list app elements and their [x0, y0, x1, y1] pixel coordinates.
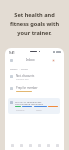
staticText: Inbox: [26, 58, 35, 62]
button[interactable]: Tab 3: [26, 141, 34, 149]
button[interactable]: Tab 5: [44, 141, 52, 149]
button[interactable]: Set 24/10 calendar get the following rem…: [8, 98, 60, 114]
staticText: meeting: [16, 109, 25, 112]
staticText: Set health and fitness goals with your t…: [0, 11, 69, 36]
staticText: Prep for member: [16, 86, 38, 90]
button[interactable]: Not. discounts: [10, 74, 60, 82]
button[interactable]: Prep for member: [10, 86, 60, 94]
button[interactable]: Tab 2: [17, 141, 25, 149]
button[interactable]: Tab 6: [53, 141, 61, 149]
staticText: subtitle line: [16, 78, 29, 81]
staticText: Not. discounts: [16, 74, 35, 78]
staticText: TODAY · TASKS: [10, 67, 28, 70]
staticText: Set 24/10 calendar get the following rem…: [15, 100, 44, 106]
staticText: notes: [36, 109, 42, 112]
button[interactable]: Tab 4: [35, 141, 43, 149]
button[interactable]: Tab 1: [8, 141, 16, 149]
button[interactable]: Account: [51, 58, 55, 62]
button[interactable]: Menu: [9, 58, 13, 62]
staticText: 9:41: [9, 51, 15, 55]
